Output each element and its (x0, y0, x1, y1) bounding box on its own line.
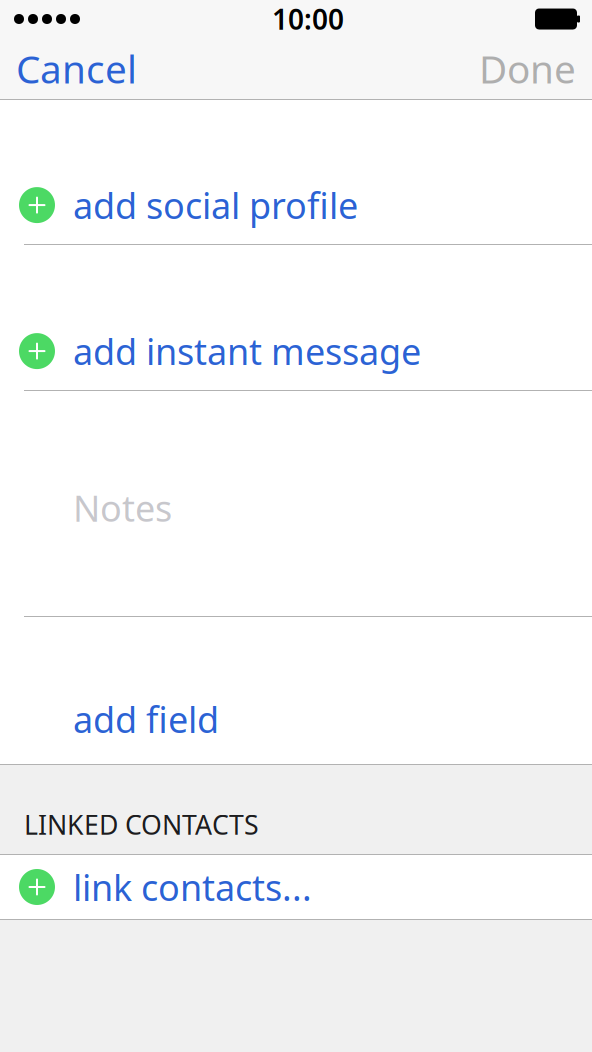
staticText: add instant message (73, 327, 421, 375)
button[interactable]: add field (0, 617, 592, 764)
button[interactable]: add instant message (0, 245, 592, 390)
staticText: link contacts... (73, 863, 312, 911)
button[interactable]: Done (479, 31, 592, 106)
button[interactable]: link contacts... (0, 855, 592, 919)
staticText: LINKED CONTACTS (24, 807, 259, 842)
staticText: add field (73, 695, 219, 743)
button[interactable]: Notes (0, 391, 592, 616)
button[interactable]: Cancel (0, 31, 137, 106)
staticText: Cancel (16, 43, 137, 94)
staticText: 10:00 (272, 0, 344, 38)
staticText: add social profile (73, 181, 358, 229)
button[interactable]: add social profile (0, 100, 592, 244)
staticText: Notes (73, 484, 172, 532)
staticText: Done (479, 43, 576, 94)
